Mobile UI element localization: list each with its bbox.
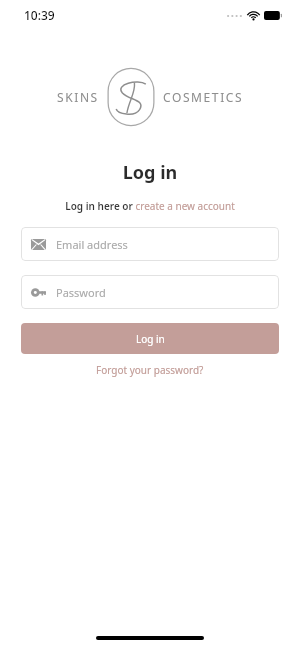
staticText: 10:39: [24, 7, 55, 23]
staticText: Password: [56, 285, 106, 300]
staticText: Log in: [0, 160, 300, 185]
button[interactable]: Email address: [21, 227, 279, 261]
button[interactable]: Forgot your password?: [0, 363, 300, 377]
staticText: Log in: [136, 332, 165, 346]
staticText: Email address: [56, 237, 128, 252]
staticText: COSMETICS: [163, 89, 244, 105]
button[interactable]: Log in here or create a new account: [0, 199, 300, 213]
staticText: SKINS: [57, 89, 99, 105]
button[interactable]: Log in: [21, 323, 279, 354]
button[interactable]: Password: [21, 275, 279, 309]
staticText: Forgot your password?: [96, 363, 204, 377]
